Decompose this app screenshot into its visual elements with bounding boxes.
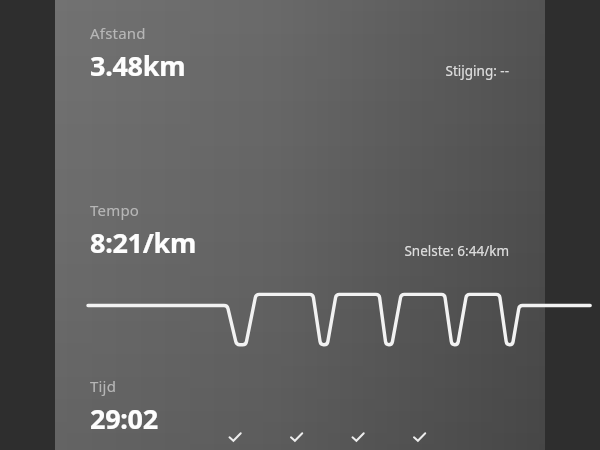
other: Completed splits	[55, 427, 545, 449]
button[interactable]: Tempo	[88, 198, 199, 263]
staticText: Tempo	[90, 200, 140, 220]
other: Pace graph	[88, 291, 510, 347]
button[interactable]: Tijd	[88, 374, 160, 439]
staticText: Snelste: 6:44/km	[404, 242, 509, 260]
button[interactable]: Stijging: --	[443, 60, 511, 82]
staticText: 8:21/km	[90, 224, 197, 261]
button[interactable]: Snelste: 6:44/km	[402, 240, 511, 262]
staticText: 29:02	[90, 400, 158, 437]
staticText: Tijd	[90, 376, 117, 396]
staticText: Stijging: --	[445, 62, 509, 80]
button[interactable]: Afstand	[88, 21, 188, 86]
staticText: Afstand	[90, 23, 146, 43]
staticText: 3.48km	[90, 47, 186, 84]
